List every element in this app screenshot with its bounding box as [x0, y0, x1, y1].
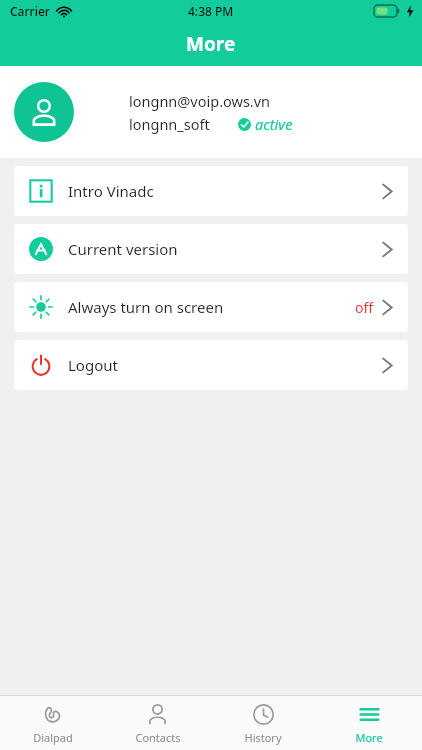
- staticText: More: [186, 31, 236, 57]
- staticText: Dialpad: [33, 730, 73, 745]
- button[interactable]: Always turn on screen: [14, 282, 408, 332]
- other: Dialpad: [41, 703, 64, 726]
- staticText: off: [355, 298, 374, 317]
- staticText: longnn_soft: [129, 114, 210, 134]
- staticText: active: [255, 114, 293, 134]
- button[interactable]: longnn@voip.ows.vn: [0, 66, 422, 158]
- button[interactable]: Logout: [14, 340, 408, 390]
- staticText: Intro Vinadc: [68, 181, 154, 201]
- staticText: Carrier: [10, 3, 50, 19]
- staticText: Always turn on screen: [68, 297, 224, 317]
- other: History: [252, 703, 275, 726]
- staticText: Contacts: [135, 730, 181, 745]
- staticText: 4:38 PM: [188, 3, 234, 19]
- button[interactable]: History: [210, 696, 316, 750]
- button[interactable]: Current version: [14, 224, 408, 274]
- staticText: Current version: [68, 239, 178, 259]
- other: More: [358, 703, 381, 726]
- staticText: Logout: [68, 355, 118, 375]
- staticText: History: [244, 730, 282, 745]
- other: Contacts: [146, 703, 169, 726]
- button[interactable]: Dialpad: [0, 696, 105, 750]
- staticText: longnn@voip.ows.vn: [129, 91, 271, 111]
- button[interactable]: More: [316, 696, 422, 750]
- button[interactable]: Contacts: [105, 696, 210, 750]
- staticText: More: [355, 730, 383, 745]
- button[interactable]: Intro Vinadc: [14, 166, 408, 216]
